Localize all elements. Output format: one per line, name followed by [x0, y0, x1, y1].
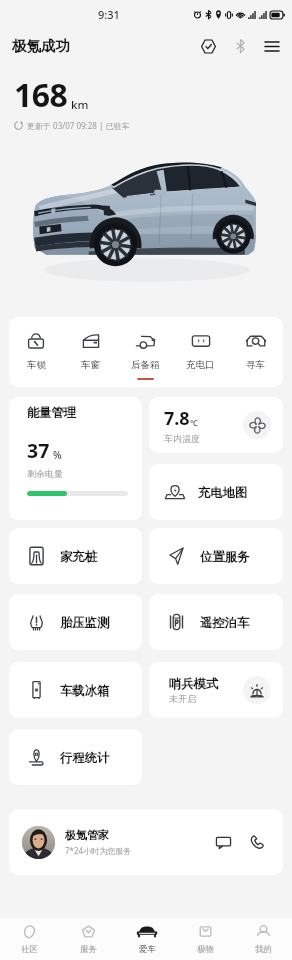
staticText: 充电地图 — [198, 485, 248, 500]
button[interactable]: Verified — [196, 34, 220, 58]
button[interactable]: 遥控泊车 — [149, 594, 283, 650]
button[interactable]: 后备箱 — [118, 317, 173, 387]
staticText: ℃ — [190, 417, 198, 428]
staticText: 7.8 — [164, 406, 190, 431]
staticText: km — [71, 97, 89, 113]
button[interactable]: 7.8 — [149, 397, 283, 453]
staticText: 我的 — [255, 944, 272, 955]
button[interactable]: 哨兵模式 — [149, 662, 283, 718]
staticText: 寻车 — [246, 359, 265, 371]
button[interactable]: Bluetooth — [228, 34, 252, 58]
button[interactable]: 行程统计 — [9, 729, 142, 785]
staticText: 极物 — [197, 944, 214, 955]
staticText: 极氪成功 — [12, 37, 70, 55]
button[interactable]: 极物 — [176, 918, 234, 960]
button[interactable]: 车锁 — [9, 317, 63, 387]
staticText: 哨兵模式 — [169, 676, 219, 691]
button[interactable]: 寻车 — [228, 317, 283, 387]
staticText: 9:31 — [98, 7, 120, 22]
staticText: % — [53, 448, 62, 462]
staticText: 胎压监测 — [60, 615, 110, 630]
staticText: 168 — [14, 73, 68, 117]
button[interactable]: 爱车 — [118, 918, 176, 960]
staticText: 车窗 — [81, 359, 100, 371]
staticText: 车内温度 — [164, 433, 200, 444]
button[interactable]: Message — [211, 830, 235, 854]
button[interactable]: 极氪管家 — [9, 809, 283, 875]
staticText: 未开启 — [169, 693, 196, 704]
staticText: 行程统计 — [60, 750, 110, 765]
staticText: 更新于 03/07 09:28 | 已驻车 — [27, 120, 130, 131]
staticText: 充电口 — [186, 359, 215, 371]
button[interactable]: 能量管理 — [9, 397, 142, 520]
button[interactable]: 位置服务 — [149, 528, 283, 584]
staticText: 遥控泊车 — [200, 615, 250, 630]
staticText: 家充桩 — [60, 549, 97, 564]
button[interactable]: 车载冰箱 — [9, 662, 142, 718]
button[interactable]: 家充桩 — [9, 528, 142, 584]
staticText: 7*24小时为您服务 — [65, 845, 132, 856]
staticText: 能量管理 — [27, 405, 77, 420]
button[interactable]: 我的 — [234, 918, 292, 960]
button[interactable]: Menu — [260, 34, 284, 58]
button[interactable]: Call — [245, 830, 269, 854]
button[interactable]: 服务 — [59, 918, 118, 960]
staticText: 位置服务 — [200, 549, 250, 564]
button[interactable]: 充电口 — [173, 317, 228, 387]
staticText: 社区 — [21, 944, 38, 955]
button[interactable]: 胎压监测 — [9, 594, 142, 650]
staticText: 后备箱 — [131, 359, 160, 371]
staticText: 车载冰箱 — [60, 683, 110, 698]
staticText: 极氪管家 — [65, 828, 109, 842]
staticText: 37 — [27, 437, 50, 464]
staticText: 剩余电量 — [27, 468, 63, 479]
staticText: 服务 — [80, 944, 97, 955]
button[interactable]: 充电地图 — [149, 464, 283, 520]
staticText: 车锁 — [27, 359, 46, 371]
button[interactable]: 社区 — [0, 918, 59, 960]
button[interactable]: 车窗 — [63, 317, 118, 387]
staticText: 爱车 — [139, 944, 156, 955]
